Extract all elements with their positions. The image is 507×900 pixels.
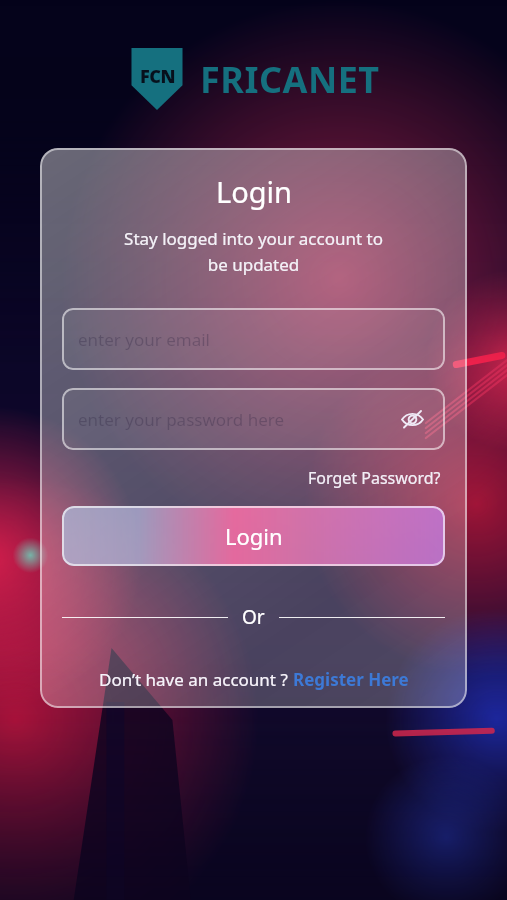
staticText: Forget Password?	[308, 467, 441, 489]
staticText: Register Here	[293, 668, 409, 691]
button[interactable]: enter your password here	[62, 388, 445, 450]
button[interactable]: Show password	[395, 402, 429, 436]
staticText: Stay logged into your account to be upda…	[124, 227, 383, 276]
staticText: FRICANET	[200, 55, 380, 104]
staticText: FCN	[140, 64, 175, 89]
button[interactable]: Forget Password?	[304, 464, 445, 492]
staticText: Don’t have an account ?	[99, 668, 293, 691]
staticText: Login	[225, 521, 283, 551]
button[interactable]: Login	[62, 506, 445, 566]
staticText: enter your password here	[78, 408, 285, 431]
staticText: enter your email	[78, 328, 210, 351]
button[interactable]: enter your email	[62, 308, 445, 370]
staticText: Login	[216, 172, 292, 211]
staticText: Or	[242, 604, 265, 630]
button[interactable]: Don’t have an account ?	[95, 664, 413, 695]
